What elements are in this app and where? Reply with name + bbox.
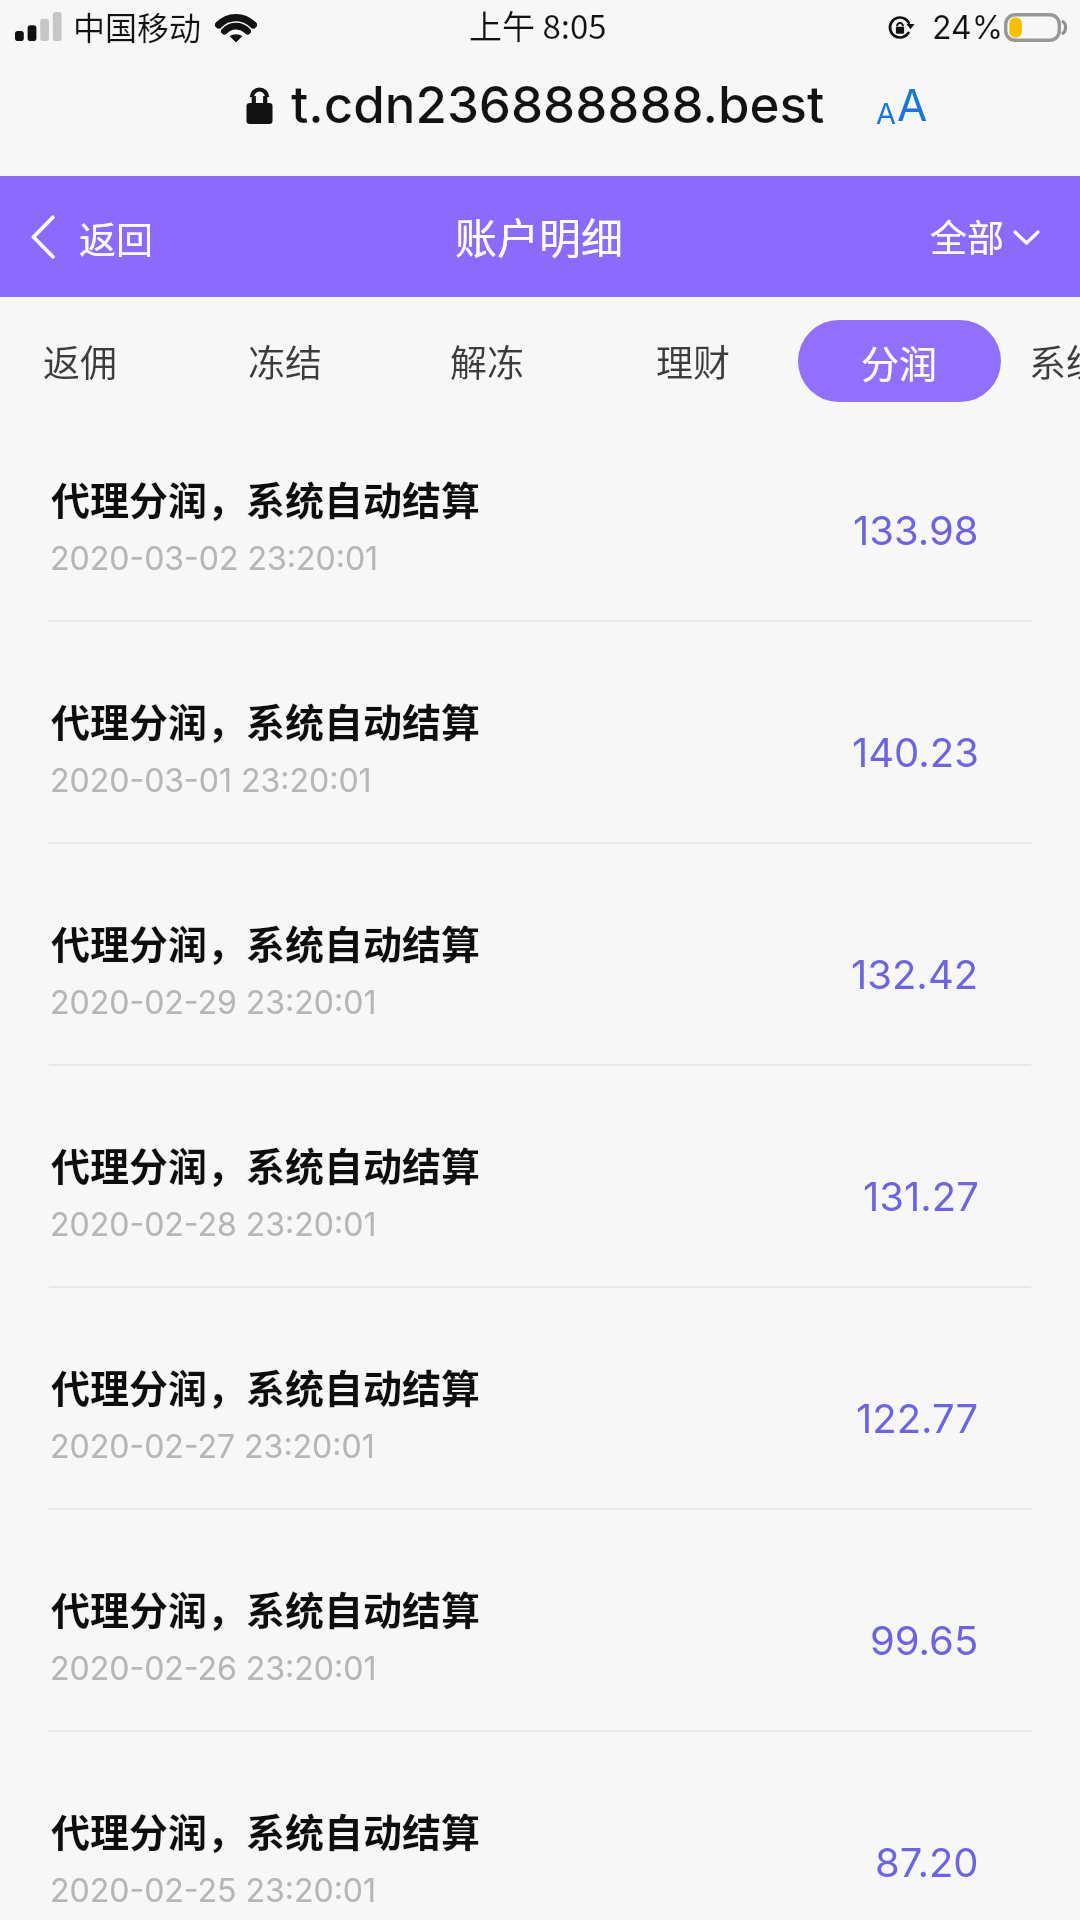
staticText: 2020-03-01 23:20:01: [50, 761, 372, 800]
staticText: 133.98: [853, 506, 979, 554]
staticText: 代理分润，系统自动结算: [51, 470, 481, 526]
staticText: 代理分润，系统自动结算: [51, 914, 481, 970]
staticText: 中国移动: [73, 3, 202, 49]
staticText: 2020-02-28 23:20:01: [50, 1205, 377, 1244]
button[interactable]: 返佣: [20, 320, 140, 402]
button[interactable]: 代理分润，系统自动结算: [0, 1066, 1080, 1288]
button[interactable]: 代理分润，系统自动结算: [0, 400, 1080, 622]
staticText: 返佣: [43, 334, 117, 388]
staticText: 87.20: [875, 1838, 979, 1886]
staticText: A: [897, 78, 928, 131]
staticText: 2020-02-27 23:20:01: [50, 1427, 375, 1466]
staticText: 返回: [79, 211, 153, 265]
button[interactable]: 代理分润，系统自动结算: [0, 1510, 1080, 1732]
staticText: 全部: [930, 209, 1004, 263]
staticText: 代理分润，系统自动结算: [51, 1802, 481, 1858]
staticText: 131.27: [863, 1172, 979, 1220]
staticText: 账户明细: [455, 205, 624, 266]
button[interactable]: 系统: [1029, 320, 1080, 402]
button[interactable]: 返回: [0, 188, 175, 286]
button[interactable]: 代理分润，系统自动结算: [0, 622, 1080, 844]
staticText: 分润: [861, 334, 938, 389]
staticText: 2020-02-26 23:20:01: [50, 1649, 377, 1688]
staticText: 2020-03-02 23:20:01: [50, 539, 379, 578]
button[interactable]: 分润: [798, 320, 1001, 402]
staticText: 理财: [656, 334, 730, 388]
button[interactable]: 理财: [633, 320, 753, 402]
button[interactable]: 解冻: [427, 320, 547, 402]
staticText: 132.42: [851, 950, 979, 998]
button[interactable]: Text size: [872, 71, 932, 132]
other: Secure: [246, 86, 273, 124]
staticText: 代理分润，系统自动结算: [51, 692, 481, 748]
staticText: 代理分润，系统自动结算: [51, 1358, 481, 1414]
staticText: 代理分润，系统自动结算: [51, 1580, 481, 1636]
staticText: 解冻: [450, 334, 524, 388]
staticText: 99.65: [870, 1616, 979, 1664]
staticText: 上午 8:05: [469, 1, 607, 49]
button[interactable]: 冻结: [225, 320, 345, 402]
staticText: 140.23: [852, 728, 979, 776]
other: Rotation lock: [889, 15, 916, 40]
staticText: t.cdn236888888.best: [291, 74, 825, 136]
staticText: 2020-02-25 23:20:01: [50, 1871, 377, 1910]
staticText: 24%: [932, 8, 1004, 47]
button[interactable]: 代理分润，系统自动结算: [0, 844, 1080, 1066]
button[interactable]: 代理分润，系统自动结算: [0, 1732, 1080, 1920]
staticText: A: [876, 96, 897, 131]
button[interactable]: 全部: [908, 188, 1080, 286]
button[interactable]: 代理分润，系统自动结算: [0, 1288, 1080, 1510]
staticText: 系统: [1029, 334, 1080, 388]
staticText: 2020-02-29 23:20:01: [50, 983, 377, 1022]
staticText: 冻结: [248, 334, 322, 388]
staticText: 代理分润，系统自动结算: [51, 1136, 481, 1192]
staticText: 122.77: [856, 1394, 979, 1442]
